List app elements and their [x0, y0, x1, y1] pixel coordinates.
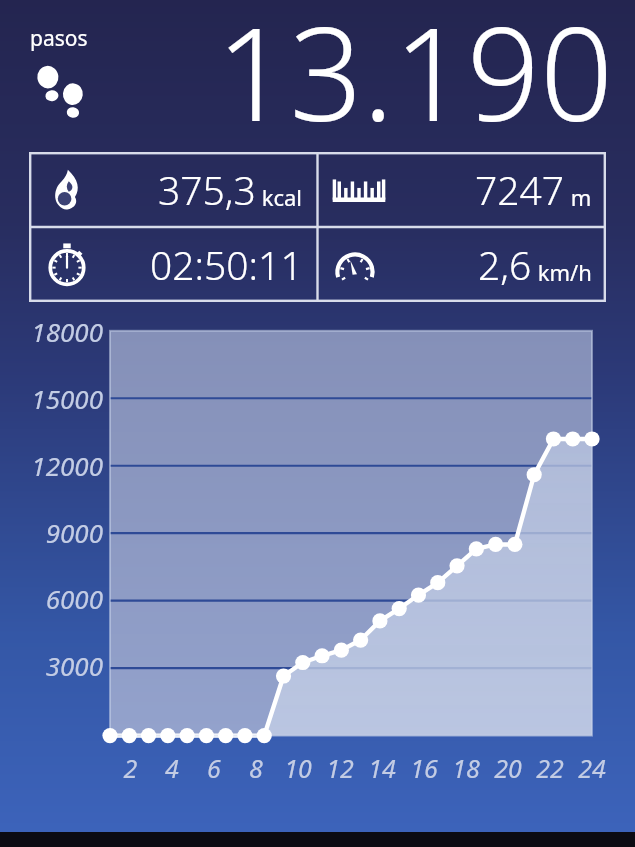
staticText: 16 [403, 751, 445, 785]
staticText: 2 [110, 751, 151, 785]
staticText: 7247 [475, 163, 565, 216]
staticText: 375,3 [158, 163, 256, 216]
button[interactable]: Calories [29, 152, 317, 227]
staticText: 9000 [3, 515, 103, 550]
staticText: 02:50:11 [150, 238, 303, 291]
staticText: 15000 [3, 381, 103, 416]
staticText: 24 [571, 751, 613, 785]
staticText: 2,6 [478, 238, 532, 291]
staticText: km/h [532, 257, 592, 287]
staticText: kcal [256, 182, 303, 212]
staticText: 4 [151, 751, 193, 785]
button[interactable]: 18000 [0, 326, 635, 832]
button[interactable]: pasos [0, 0, 635, 152]
staticText: 12000 [3, 448, 103, 483]
staticText: 10 [277, 751, 319, 785]
button[interactable]: Distance [317, 152, 606, 227]
staticText: 6000 [3, 581, 103, 616]
other: Steps [30, 56, 92, 126]
staticText: 12 [319, 751, 361, 785]
staticText: 3000 [3, 648, 103, 683]
button[interactable]: Speed [317, 227, 606, 302]
staticText: 22 [529, 751, 571, 785]
staticText: pasos [30, 24, 88, 53]
staticText: 6 [193, 751, 235, 785]
button[interactable]: Duration [29, 227, 317, 302]
staticText: 8 [235, 751, 277, 785]
staticText: 18000 [3, 314, 103, 349]
staticText: m [565, 182, 592, 212]
staticText: 18 [445, 751, 487, 785]
staticText: 20 [487, 751, 529, 785]
staticText: 13.190 [216, 0, 613, 136]
staticText: 14 [361, 751, 403, 785]
